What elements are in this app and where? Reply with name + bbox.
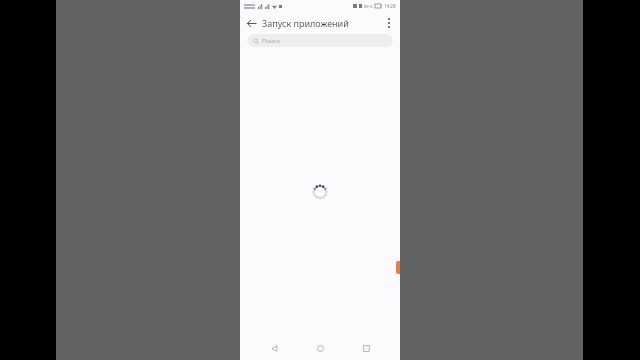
- staticText: 14:28: [384, 3, 396, 9]
- staticText: Запуск приложений: [262, 17, 378, 29]
- button[interactable]: Недавние приложения: [354, 336, 378, 360]
- button[interactable]: Главный экран: [308, 336, 332, 360]
- button[interactable]: Назад: [262, 336, 286, 360]
- staticText: 89 %: [364, 4, 373, 9]
- button[interactable]: Назад: [240, 12, 262, 34]
- staticText: Поиск: [262, 37, 280, 45]
- button[interactable]: Ещё: [378, 12, 400, 34]
- button[interactable]: Поиск: [247, 34, 393, 47]
